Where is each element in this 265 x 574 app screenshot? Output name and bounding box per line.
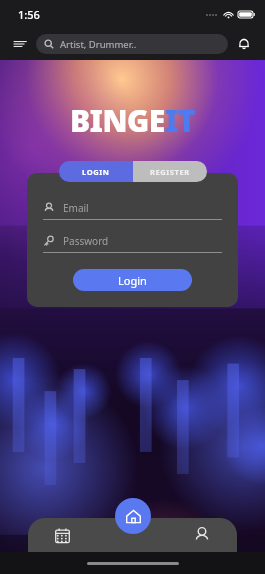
button[interactable]: LOGIN	[59, 161, 133, 182]
button[interactable]: Password	[43, 230, 222, 252]
button[interactable]: Menu	[9, 33, 31, 55]
button[interactable]: Artist, Drummer..	[36, 34, 228, 54]
staticText: LOGIN	[82, 167, 110, 177]
button[interactable]: Calendar	[28, 518, 97, 552]
staticText: 1:56	[18, 7, 40, 22]
button[interactable]: Login	[73, 269, 192, 291]
staticText: BINGE	[70, 100, 165, 141]
button[interactable]: Profile	[167, 518, 237, 552]
staticText: Email	[63, 201, 89, 215]
button[interactable]: REGISTER	[133, 161, 207, 182]
staticText: Artist, Drummer..	[60, 38, 137, 51]
staticText: Password	[63, 234, 109, 248]
button[interactable]: Notifications	[232, 32, 256, 56]
staticText: Login	[118, 273, 147, 288]
staticText: REGISTER	[150, 167, 190, 177]
button[interactable]: Home	[115, 498, 151, 534]
staticText: IT	[165, 100, 195, 141]
button[interactable]: Email	[43, 197, 222, 219]
